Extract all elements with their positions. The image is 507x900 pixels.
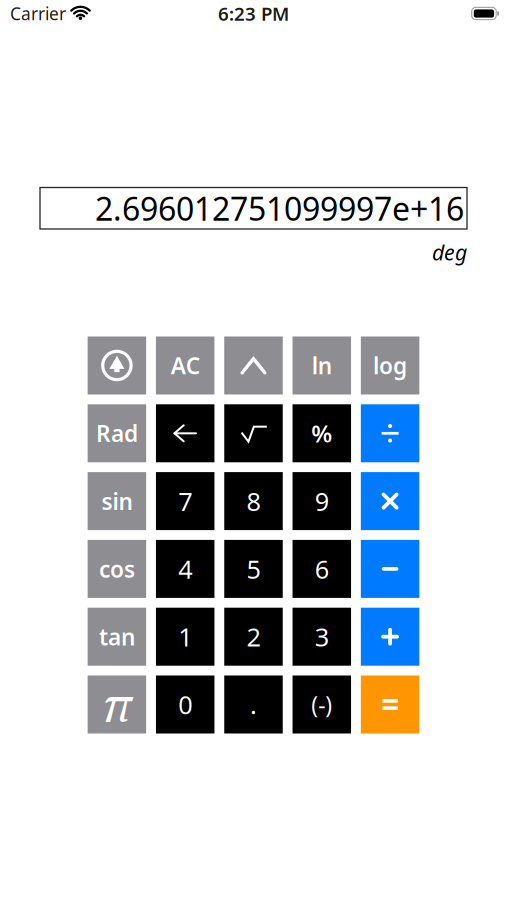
staticText: 0 <box>178 688 192 721</box>
button[interactable]: 9 <box>292 472 351 530</box>
button[interactable]: Square root <box>224 404 283 462</box>
button[interactable]: 1 <box>156 608 214 666</box>
staticText: cos <box>99 554 135 584</box>
staticText: log <box>373 350 407 380</box>
button[interactable]: Divide <box>361 404 419 462</box>
button[interactable]: AC <box>156 336 214 394</box>
button[interactable]: (-) <box>292 675 351 733</box>
staticText: π <box>102 674 131 735</box>
button[interactable]: Rad <box>88 404 146 462</box>
staticText: ln <box>312 350 332 380</box>
button[interactable]: 0 <box>156 675 214 733</box>
button[interactable]: 4 <box>156 540 214 598</box>
button[interactable]: 8 <box>224 472 283 530</box>
button[interactable]: Multiply <box>361 472 419 530</box>
staticText: AC <box>171 350 200 380</box>
staticText: 8 <box>246 484 260 518</box>
button[interactable]: Power <box>224 336 283 394</box>
staticText: sin <box>101 486 132 516</box>
button[interactable]: Minus <box>361 540 419 598</box>
button[interactable]: Delete <box>156 404 214 462</box>
staticText: 4 <box>178 552 192 586</box>
staticText: Rad <box>96 418 138 448</box>
staticText: tan <box>99 622 135 652</box>
staticText: 9 <box>315 484 329 518</box>
staticText: deg <box>432 238 467 266</box>
staticText: % <box>311 417 332 449</box>
button[interactable]: log <box>361 336 419 394</box>
staticText: 2 <box>246 620 260 653</box>
button[interactable]: 2 <box>224 608 283 666</box>
button[interactable]: 5 <box>224 540 283 598</box>
button[interactable]: 7 <box>156 472 214 530</box>
button[interactable]: 3 <box>292 608 351 666</box>
staticText: 6 <box>315 552 329 586</box>
staticText: (-) <box>311 689 332 719</box>
staticText: . <box>250 688 257 721</box>
staticText: 3 <box>315 620 329 653</box>
button[interactable]: . <box>224 675 283 733</box>
button[interactable]: 6 <box>292 540 351 598</box>
button[interactable]: Shift <box>88 336 146 394</box>
staticText: 1 <box>178 620 192 653</box>
button[interactable]: sin <box>88 472 146 530</box>
button[interactable]: ln <box>292 336 351 394</box>
button[interactable]: cos <box>88 540 146 598</box>
button[interactable]: Pi <box>88 675 146 733</box>
staticText: 6:23 PM <box>218 1 289 26</box>
staticText: 2.696012751099997e+16 <box>95 187 464 229</box>
staticText: 5 <box>246 552 260 586</box>
button[interactable]: Plus <box>361 608 419 666</box>
button[interactable]: Equals <box>361 675 419 733</box>
button[interactable]: % <box>292 404 351 462</box>
button[interactable]: tan <box>88 608 146 666</box>
staticText: 7 <box>178 484 192 518</box>
staticText: Carrier <box>10 2 66 25</box>
